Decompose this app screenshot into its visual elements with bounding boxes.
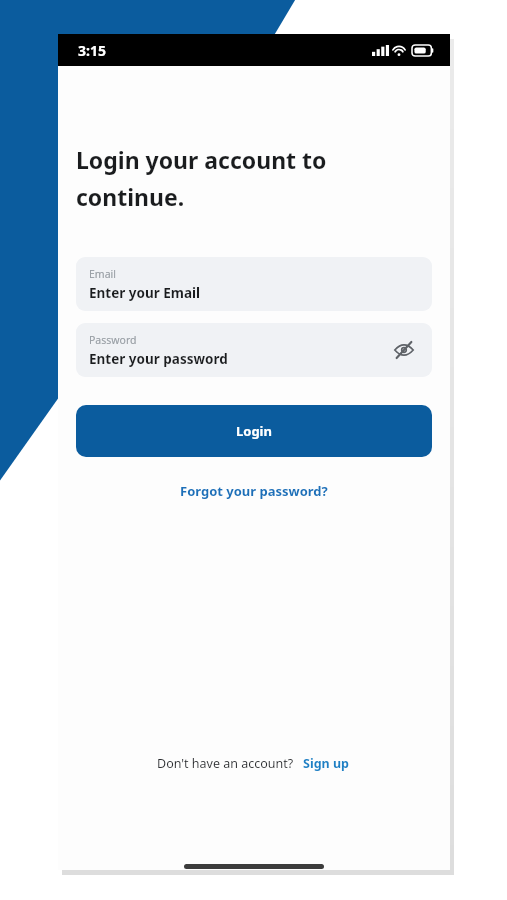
staticText: Login [236, 422, 272, 440]
staticText: Email [89, 267, 116, 281]
button[interactable]: Email [76, 257, 432, 311]
staticText: Forgot your password? [180, 482, 328, 500]
button[interactable]: Password [76, 323, 432, 377]
button[interactable]: Hide password [389, 335, 419, 365]
button[interactable]: Sign up [300, 753, 352, 774]
button[interactable]: Login [76, 405, 432, 457]
staticText: 3:15 [78, 41, 106, 60]
staticText: Enter your password [89, 350, 228, 368]
staticText: Login your account to continue. [76, 144, 327, 213]
staticText: Sign up [303, 755, 349, 772]
staticText: Don't have an account? [157, 755, 294, 772]
button[interactable]: Forgot your password? [174, 479, 334, 503]
staticText: Password [89, 333, 137, 347]
staticText: Enter your Email [89, 284, 201, 302]
